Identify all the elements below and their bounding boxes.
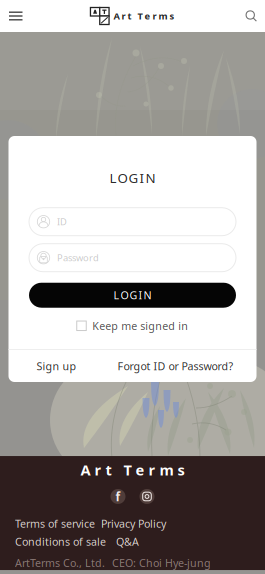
button[interactable]: Search [237, 0, 265, 32]
staticText: Privacy Policy [101, 516, 166, 531]
button[interactable]: ID [29, 208, 236, 236]
staticText: A r t T e r m s [80, 460, 184, 479]
button[interactable]: L O G I N [29, 283, 236, 308]
button[interactable]: Sign up [36, 351, 76, 381]
staticText: Terms of service [15, 516, 95, 531]
staticText: Password [57, 251, 99, 264]
button[interactable]: Q&A [116, 535, 139, 549]
button[interactable]: Facebook [110, 488, 125, 504]
staticText: Conditions of sale [15, 535, 106, 549]
button[interactable]: Forgot ID or Password? [117, 351, 233, 381]
staticText: Keep me signed in [92, 319, 188, 333]
button[interactable]: Terms of service [15, 516, 95, 531]
button[interactable]: Conditions of sale [15, 535, 106, 549]
button[interactable]: Privacy Policy [101, 516, 166, 531]
button[interactable]: Menu [0, 0, 31, 31]
button[interactable]: Password [29, 244, 236, 272]
staticText: Forgot ID or Password? [117, 359, 233, 373]
staticText: CEO: Choi Hye-jung [112, 556, 211, 570]
button[interactable]: Art Terms home [90, 1, 175, 30]
staticText: f [115, 488, 120, 504]
staticText: L O G I N [113, 288, 151, 302]
button[interactable]: Keep me signed in [77, 316, 188, 336]
staticText: Sign up [36, 359, 76, 373]
staticText: ID [57, 215, 67, 228]
staticText: A r t T e r m s [114, 10, 175, 22]
staticText: ArtTerms Co., Ltd. [15, 556, 105, 570]
staticText: Q&A [116, 535, 139, 549]
staticText: L O G I N [109, 169, 155, 187]
button[interactable]: Instagram [139, 489, 154, 504]
